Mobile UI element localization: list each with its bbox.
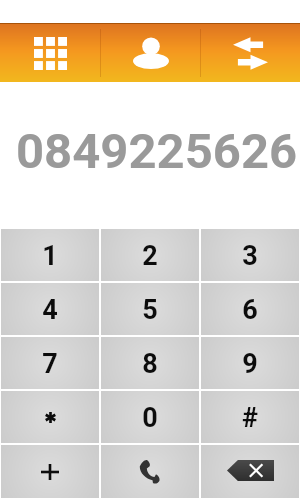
button[interactable]: 6: [201, 283, 299, 335]
button[interactable]: Call: [101, 445, 199, 498]
button[interactable]: #: [201, 391, 299, 443]
staticText: 8: [142, 348, 158, 380]
button[interactable]: Contacts: [101, 24, 200, 82]
button[interactable]: Call log: [201, 24, 300, 82]
staticText: 6: [242, 294, 258, 326]
button[interactable]: [1, 445, 99, 498]
button[interactable]: 3: [201, 229, 299, 281]
staticText: 2: [142, 240, 158, 272]
button[interactable]: 1: [1, 229, 99, 281]
staticText: 7: [42, 348, 58, 380]
staticText: 3: [242, 240, 258, 272]
staticText: 0: [142, 402, 158, 434]
button[interactable]: Delete: [201, 445, 299, 498]
staticText: 4: [42, 294, 58, 326]
staticText: 0849225626: [16, 123, 298, 180]
staticText: 1: [42, 240, 58, 272]
button[interactable]: Delete: [220, 457, 280, 487]
button[interactable]: Dialpad: [0, 24, 100, 82]
button[interactable]: 2: [101, 229, 199, 281]
button[interactable]: 7: [1, 337, 99, 389]
button[interactable]: 5: [101, 283, 199, 335]
staticText: 9: [242, 348, 258, 380]
staticText: #: [242, 402, 258, 434]
button[interactable]: [1, 391, 99, 443]
button[interactable]: 8: [101, 337, 199, 389]
staticText: 5: [142, 294, 158, 326]
button[interactable]: 4: [1, 283, 99, 335]
button[interactable]: 9: [201, 337, 299, 389]
button[interactable]: Call: [130, 452, 170, 492]
button[interactable]: 0: [101, 391, 199, 443]
